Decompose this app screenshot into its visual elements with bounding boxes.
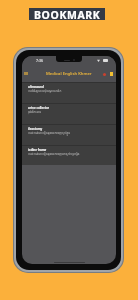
button[interactable]: urine collector [22,103,116,124]
staticText: ការវះកាត់ពោះវៀនតូចយកចេញក្រៅខ្លួន [28,131,71,135]
staticText: ileostomy [28,127,43,131]
staticText: 7:36 [36,58,44,63]
button[interactable]: ultrasound [22,82,116,103]
staticText: ultrasound [28,85,44,89]
button[interactable]: ileostomy [22,124,116,145]
staticText: ការវះកាត់ពោះវៀនតូចយកចេញមកក្រៅបន្តទៀត [28,152,80,156]
button[interactable]: Menu [22,70,29,77]
staticText: Medical English Khmer [46,71,92,77]
staticText: urine collector [28,106,49,110]
button[interactable]: iodine frame [22,145,116,165]
staticText: BOOKMARK [34,8,101,20]
staticText: ការពិនិត្យដោយអ៊ុលត្រាសោនិក [28,89,62,93]
staticText: iodine frame [28,148,47,152]
button[interactable]: Record [101,71,107,77]
button[interactable]: Bookmark [108,71,114,77]
staticText: ធុងទឹកនោម [28,110,42,114]
